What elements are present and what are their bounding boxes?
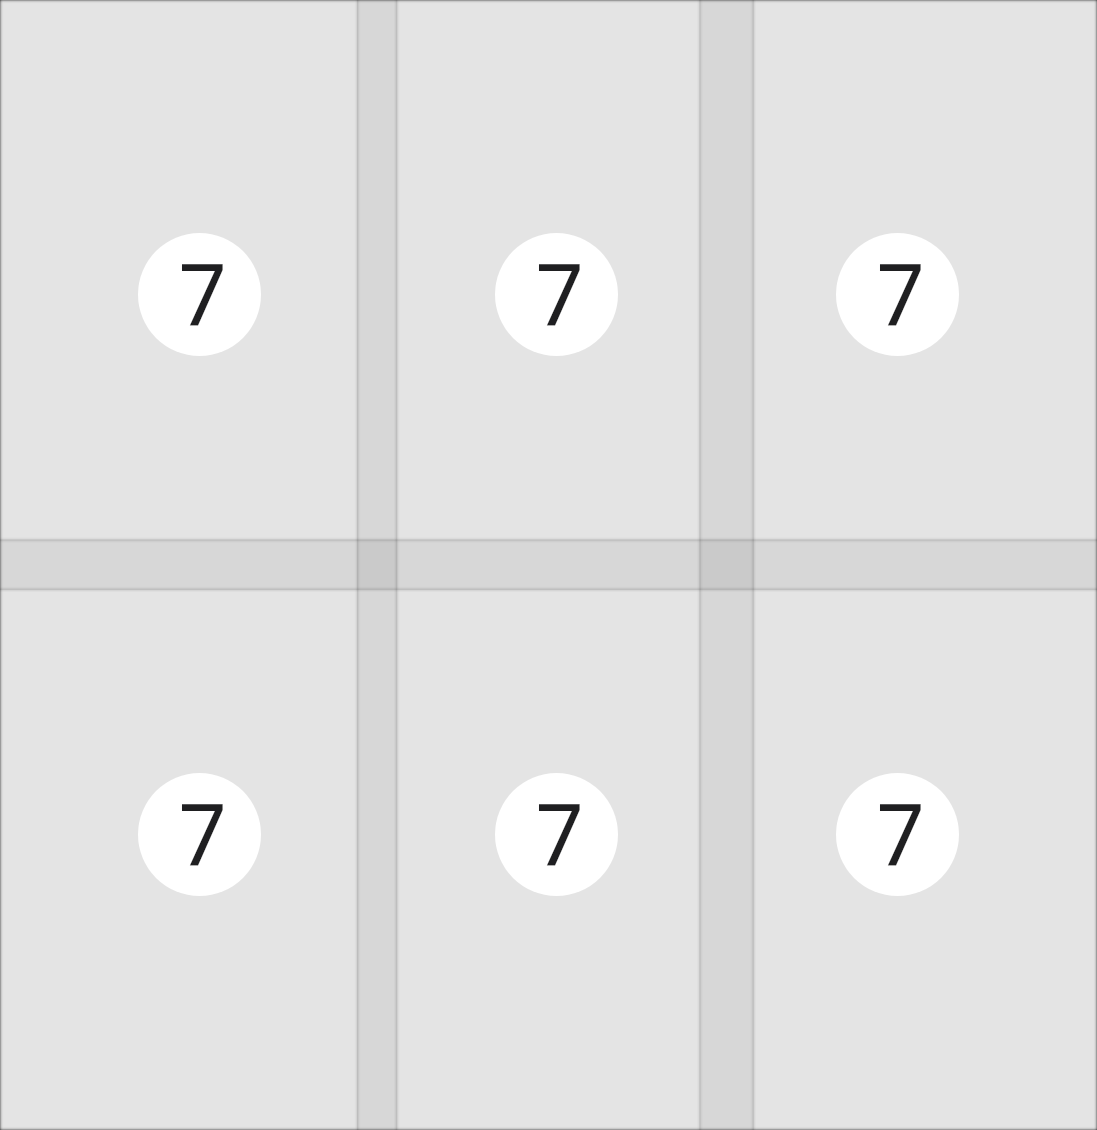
staticText: 7 — [876, 775, 925, 891]
button[interactable]: 7 — [754, 0, 1097, 540]
button[interactable]: 7 — [0, 590, 358, 1130]
button[interactable]: 7 — [398, 0, 700, 540]
staticText: 7 — [178, 775, 227, 891]
staticText: 7 — [535, 235, 584, 351]
button[interactable]: 7 — [0, 0, 358, 540]
staticText: 7 — [876, 235, 925, 351]
button[interactable]: 7 — [398, 590, 700, 1130]
staticText: 7 — [535, 775, 584, 891]
button[interactable]: 7 — [754, 590, 1097, 1130]
staticText: 7 — [178, 235, 227, 351]
